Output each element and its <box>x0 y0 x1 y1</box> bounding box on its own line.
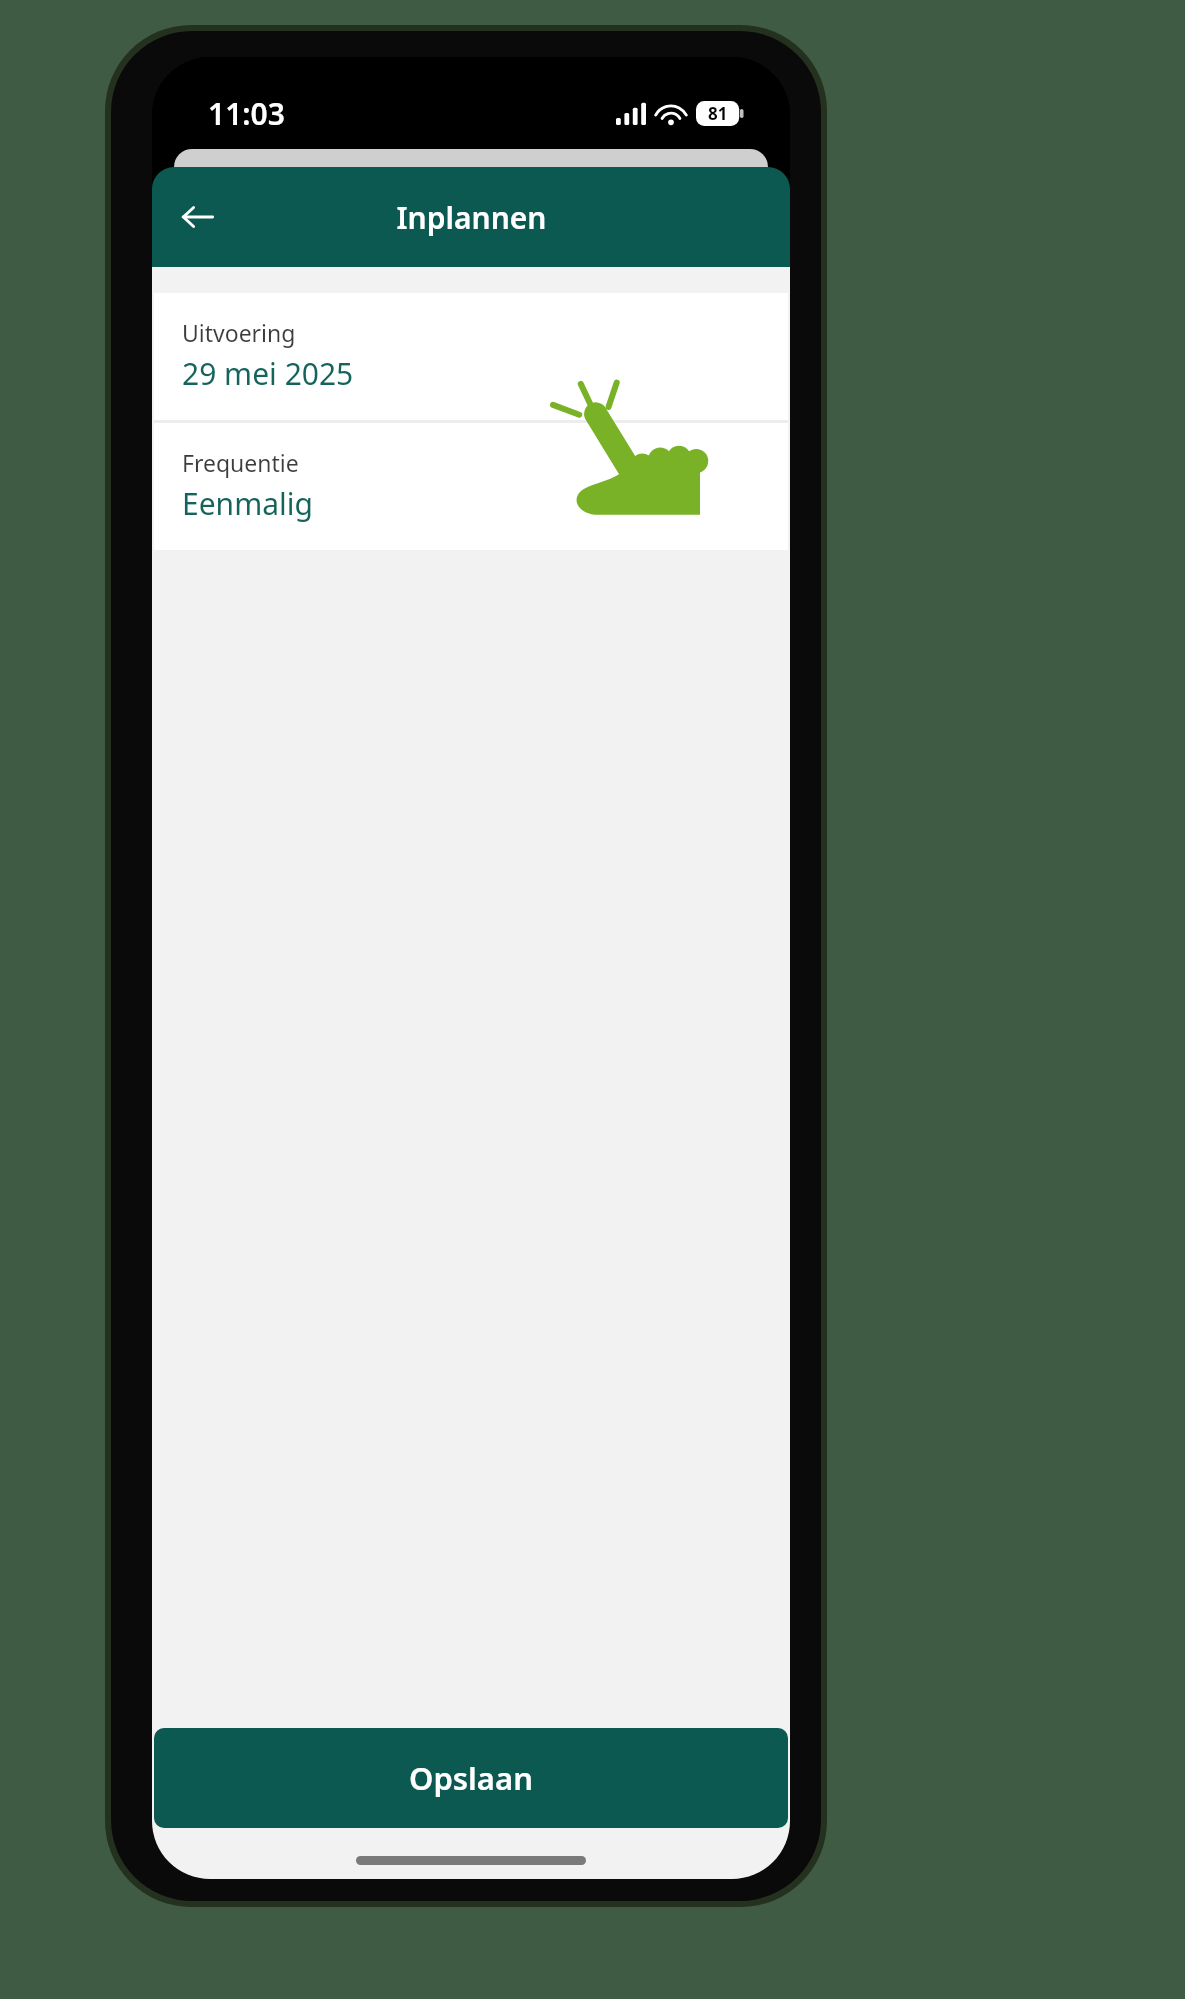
staticText: Eenmalig <box>182 483 313 524</box>
staticText: Uitvoering <box>182 317 296 348</box>
staticText: Opslaan <box>409 1757 533 1799</box>
staticText: 81 <box>708 102 728 125</box>
staticText: Inplannen <box>396 197 547 238</box>
button[interactable]: Uitvoering <box>154 293 788 420</box>
button[interactable]: Opslaan <box>154 1728 788 1828</box>
button[interactable]: Frequentie <box>154 423 788 550</box>
staticText: 29 mei 2025 <box>182 353 354 394</box>
button[interactable]: Back <box>166 186 228 248</box>
staticText: 11:03 <box>208 93 285 134</box>
staticText: Frequentie <box>182 447 299 478</box>
